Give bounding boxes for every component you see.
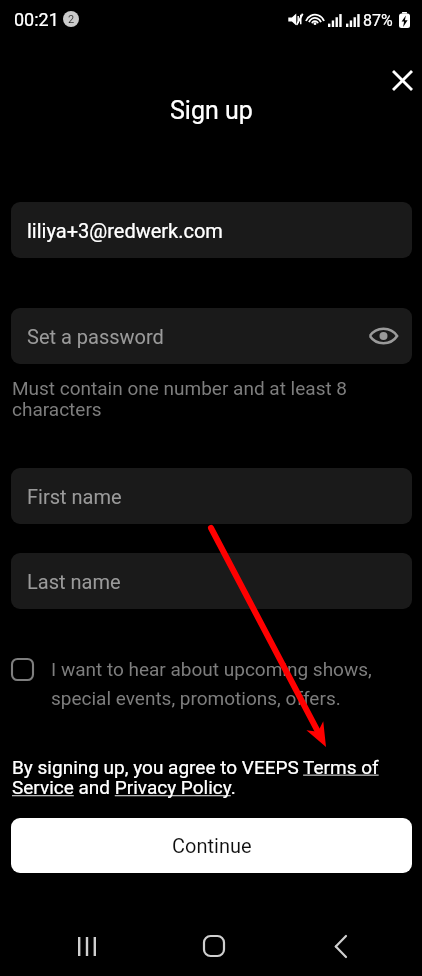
- staticText: liliya+3@redwerk.com: [27, 219, 223, 242]
- button[interactable]: Back: [300, 916, 380, 976]
- staticText: Continue: [172, 834, 252, 857]
- button[interactable]: Set a password: [11, 308, 412, 364]
- button[interactable]: Recents: [46, 916, 128, 976]
- button[interactable]: liliya+3@redwerk.com: [11, 202, 412, 258]
- staticText: 2: [68, 13, 75, 26]
- staticText: By signing up, you agree to VEEPS Terms …: [12, 756, 394, 799]
- staticText: 00:21: [14, 9, 59, 30]
- staticText: First name: [27, 485, 122, 508]
- staticText: Must contain one number and at least 8 c…: [12, 377, 368, 420]
- button[interactable]: Continue: [11, 818, 412, 873]
- staticText: I want to hear about upcoming shows, spe…: [51, 658, 416, 710]
- button[interactable]: Close: [382, 60, 422, 100]
- button[interactable]: Home: [174, 916, 254, 976]
- staticText: 87%: [363, 11, 393, 30]
- button[interactable]: Show password: [366, 319, 400, 353]
- button[interactable]: First name: [11, 468, 412, 524]
- staticText: Set a password: [27, 325, 164, 348]
- staticText: Sign up: [170, 96, 253, 125]
- button[interactable]: I want to hear about upcoming shows, spe…: [11, 658, 416, 710]
- staticText: Last name: [27, 570, 121, 593]
- button[interactable]: Last name: [11, 553, 412, 609]
